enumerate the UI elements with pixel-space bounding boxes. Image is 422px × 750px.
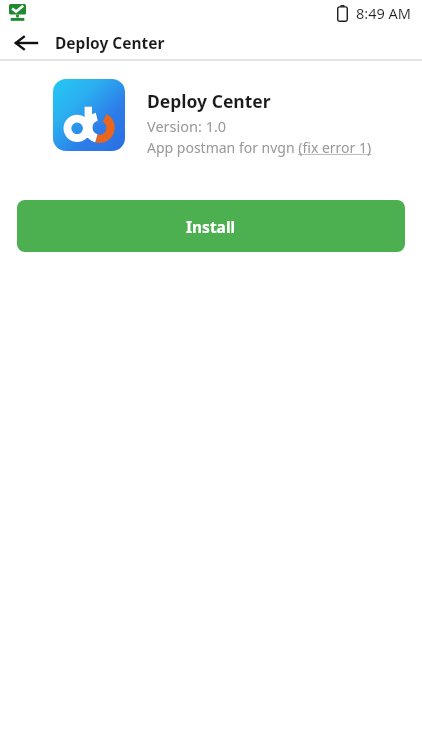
button[interactable]: Back bbox=[6, 26, 46, 59]
button[interactable]: Install bbox=[17, 200, 405, 252]
staticText: 8:49 AM bbox=[356, 3, 411, 23]
button[interactable]: App postman for nvgn (fix error 1) bbox=[147, 138, 372, 157]
staticText: Deploy Center bbox=[55, 32, 165, 53]
staticText: Version: 1.0 bbox=[147, 116, 227, 136]
staticText: Install bbox=[186, 216, 236, 237]
staticText: Deploy Center bbox=[147, 89, 271, 113]
